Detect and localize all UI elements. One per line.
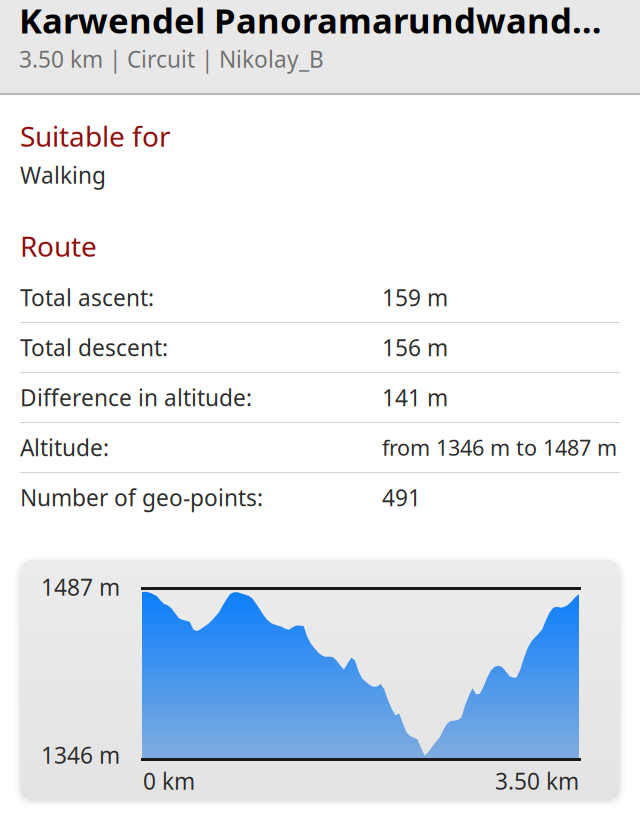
staticText: Walking: [20, 160, 106, 190]
staticText: 159 m: [382, 282, 448, 312]
staticText: Route: [20, 227, 97, 265]
staticText: 3.50 km | Circuit | Nikolay_B: [19, 44, 324, 74]
staticText: 141 m: [382, 382, 448, 412]
staticText: Difference in altitude:: [20, 382, 252, 412]
staticText: Number of geo-points:: [20, 482, 263, 512]
staticText: from 1346 m to 1487 m: [382, 433, 617, 462]
staticText: Altitude:: [20, 432, 109, 462]
staticText: 1346 m: [41, 740, 120, 770]
staticText: 1487 m: [41, 572, 120, 602]
staticText: Total descent:: [20, 332, 168, 362]
staticText: 491: [382, 482, 421, 512]
staticText: 156 m: [382, 332, 448, 362]
staticText: Suitable for: [20, 117, 171, 155]
button[interactable]: Elevation profile: [20, 560, 620, 800]
staticText: Karwendel Panoramarundwand…: [19, 0, 602, 43]
staticText: 0 km: [143, 766, 195, 796]
staticText: 3.50 km: [495, 766, 579, 796]
staticText: Total ascent:: [20, 282, 154, 312]
